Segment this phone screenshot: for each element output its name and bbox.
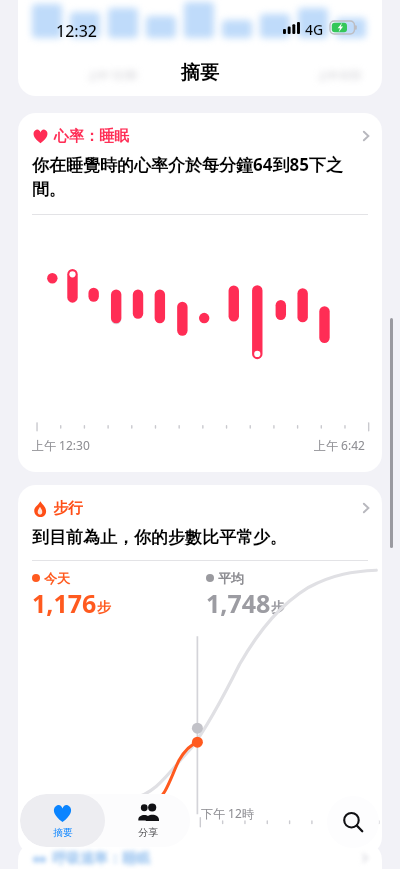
button[interactable]: 搜尋 xyxy=(327,796,379,848)
staticText: 上午 6:53 xyxy=(318,68,361,82)
staticText: 今天 xyxy=(44,570,70,586)
staticText: 到目前為止，你的步數比平常少。 xyxy=(32,527,368,548)
staticText: 4G xyxy=(305,20,324,39)
staticText: 摘要 xyxy=(181,61,219,85)
button[interactable]: 顯示更多心率資料 xyxy=(360,130,372,142)
staticText: 心率：睡眠 xyxy=(54,127,129,146)
staticText: 上午 6:42 xyxy=(314,437,365,453)
button[interactable]: 心率：睡眠 xyxy=(18,113,382,472)
staticText: 分享 xyxy=(138,826,158,839)
button[interactable]: 顯示更多步行資料 xyxy=(360,502,372,514)
staticText: 平均 xyxy=(218,570,244,586)
staticText: 12:32 xyxy=(56,20,97,42)
staticText: 下午 12時 xyxy=(201,805,254,821)
staticText: 呼吸速率：睡眠 xyxy=(52,850,150,868)
staticText: 上午 12:30 xyxy=(32,437,90,453)
staticText: 1,748 xyxy=(206,586,271,620)
button[interactable]: 分享 xyxy=(105,794,190,847)
button[interactable]: 摘要 xyxy=(20,794,105,847)
staticText: 上午 12:30 xyxy=(88,68,137,82)
staticText: 摘要 xyxy=(53,826,73,839)
staticText: 上午 xyxy=(336,805,360,820)
button[interactable]: 步行 xyxy=(18,485,382,855)
staticText: 你在睡覺時的心率介於每分鐘64到85下之間。 xyxy=(32,153,368,200)
staticText: 步行 xyxy=(53,499,83,518)
staticText: 步 xyxy=(271,599,285,617)
staticText: 步 xyxy=(97,599,111,617)
staticText: 1,176 xyxy=(32,586,97,620)
